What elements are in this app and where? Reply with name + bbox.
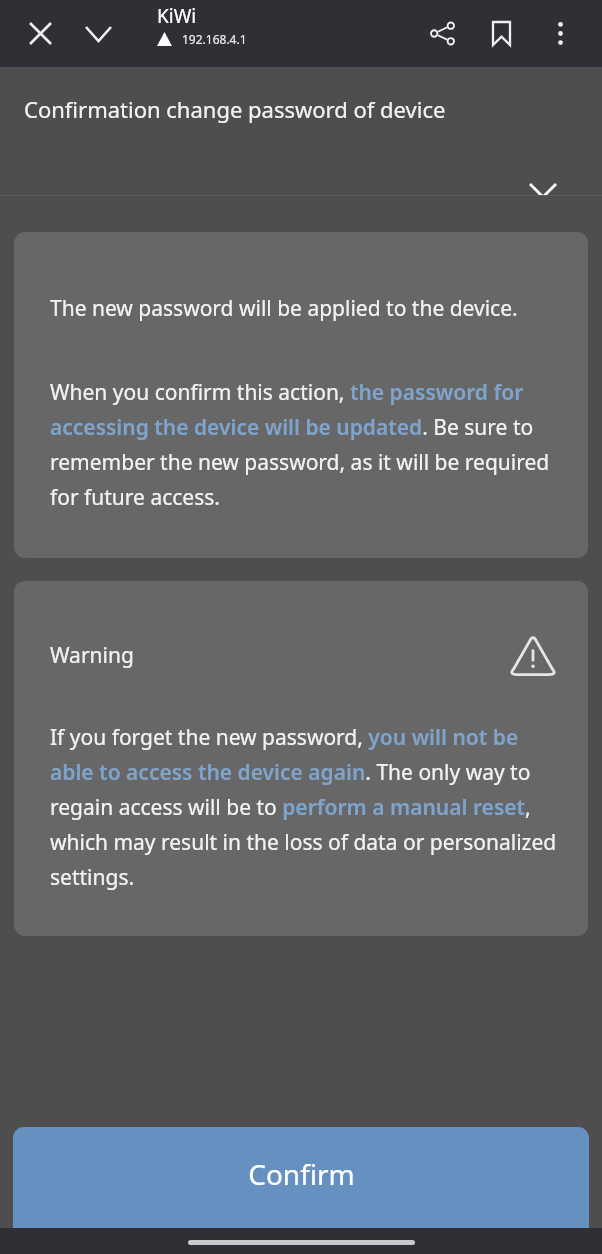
button[interactable]: The new password will be applied to the …	[14, 232, 588, 558]
staticText: 192.168.4.1	[182, 31, 247, 47]
button[interactable]: Warning	[14, 581, 588, 936]
staticText: When you confirm this action, the passwo…	[50, 378, 558, 512]
button[interactable]: Close	[512, 166, 574, 195]
button[interactable]: More options	[538, 11, 583, 56]
staticText: Confirm	[248, 1155, 355, 1193]
staticText: Warning	[50, 641, 134, 670]
button[interactable]: Bookmark	[479, 11, 524, 56]
button[interactable]: Confirm	[13, 1127, 589, 1228]
staticText: Confirmation change password of device	[24, 94, 449, 124]
button[interactable]: Close tab	[18, 11, 63, 56]
button[interactable]: Share	[420, 11, 465, 56]
other: Warning	[508, 633, 558, 677]
staticText: The new password will be applied to the …	[50, 294, 518, 323]
staticText: KiWi	[157, 3, 197, 29]
button[interactable]: Expand toolbar	[76, 11, 121, 56]
staticText: If you forget the new password, you will…	[50, 723, 558, 892]
